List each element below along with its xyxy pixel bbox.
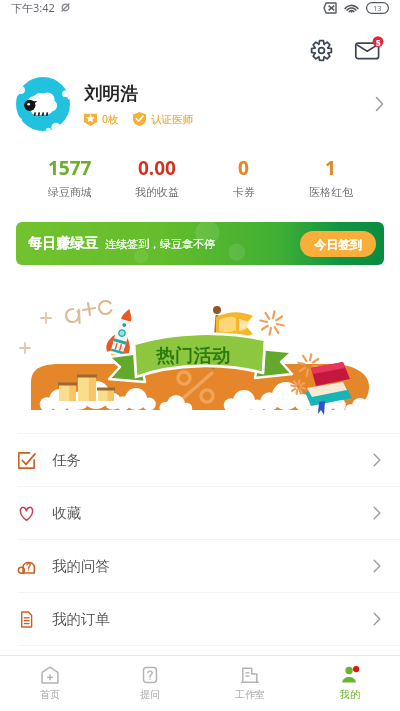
staticText: 今日签到: [314, 237, 362, 252]
staticText: 13: [373, 3, 382, 13]
button[interactable]: 我的订单: [0, 593, 400, 646]
button[interactable]: 提问: [100, 656, 200, 711]
staticText: 我的收益: [135, 185, 179, 199]
button[interactable]: 今日签到: [300, 231, 376, 257]
button[interactable]: Messages: [350, 31, 388, 69]
staticText: 我的订单: [52, 610, 110, 628]
button[interactable]: 首页: [0, 656, 100, 711]
staticText: 每日赚绿豆: [28, 235, 98, 253]
staticText: 首页: [40, 688, 60, 701]
staticText: 工作室: [235, 688, 265, 701]
button[interactable]: 收藏: [0, 487, 400, 540]
staticText: 0枚: [102, 112, 119, 126]
staticText: 下午3:42: [11, 0, 55, 15]
staticText: 卡券: [233, 185, 255, 199]
staticText: 刘明浩: [84, 83, 138, 106]
staticText: 认证医师: [151, 113, 193, 126]
staticText: 提问: [140, 688, 160, 701]
button[interactable]: 0: [200, 148, 287, 206]
staticText: 0: [238, 155, 249, 181]
staticText: 5: [376, 37, 381, 48]
staticText: 收藏: [52, 504, 81, 522]
button[interactable]: 1: [287, 148, 374, 206]
staticText: 绿豆商城: [48, 185, 92, 199]
staticText: 0.00: [138, 155, 176, 181]
button[interactable]: 1577: [26, 148, 113, 206]
button[interactable]: 我的: [300, 656, 400, 711]
staticText: 医格红包: [309, 185, 353, 199]
staticText: 1577: [48, 155, 92, 181]
staticText: 我的: [340, 688, 360, 701]
button[interactable]: 0.00: [113, 148, 200, 206]
button[interactable]: 热门活动: [0, 265, 400, 415]
button[interactable]: 刘明浩: [0, 72, 400, 136]
staticText: 连续签到，绿豆拿不停: [105, 237, 215, 251]
button[interactable]: 我的问答: [0, 540, 400, 593]
button[interactable]: 工作室: [200, 656, 300, 711]
button[interactable]: 每日赚绿豆: [16, 222, 384, 265]
staticText: 任务: [52, 451, 81, 469]
staticText: 热门活动: [156, 344, 230, 367]
button[interactable]: Settings: [304, 33, 338, 67]
staticText: 1: [325, 155, 336, 181]
staticText: 我的问答: [52, 557, 110, 575]
button[interactable]: 任务: [0, 434, 400, 487]
